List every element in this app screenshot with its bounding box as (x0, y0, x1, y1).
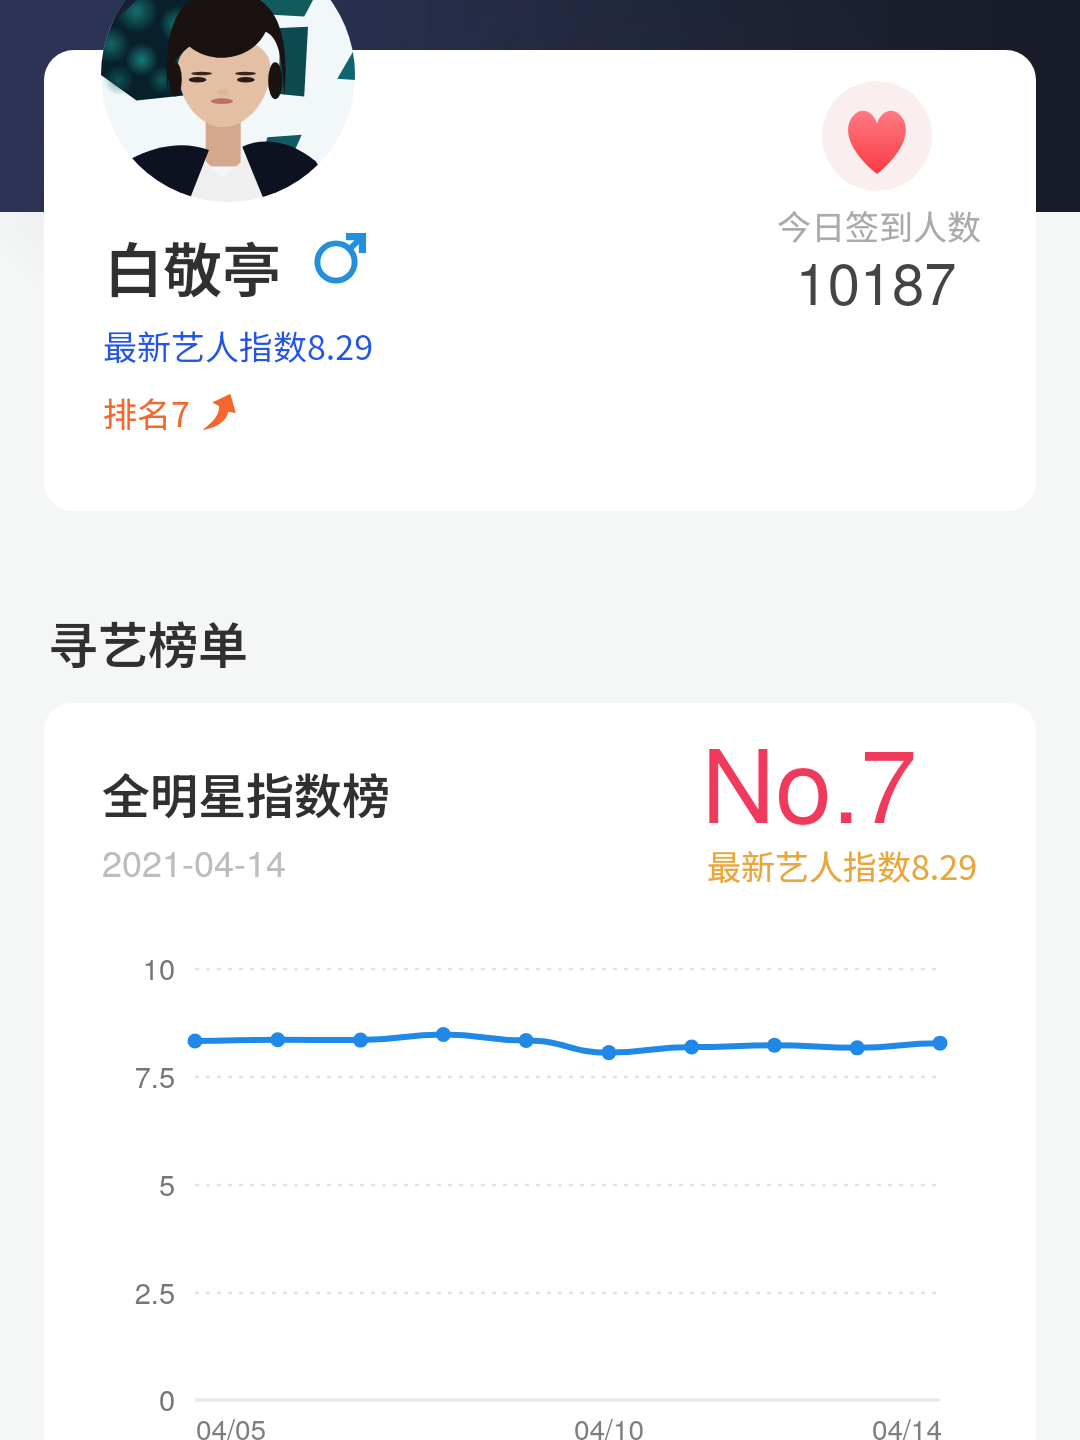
staticText: 04/14 (762, 1408, 942, 1440)
button[interactable]: Check in (822, 81, 932, 191)
button[interactable] (44, 703, 1036, 1440)
staticText: 04/05 (196, 1408, 376, 1440)
button[interactable]: 最新艺人指数8.29 (103, 321, 374, 370)
staticText: 最新艺人指数8.29 (677, 841, 977, 890)
staticText: 0 (55, 1378, 175, 1420)
other: Male (314, 228, 370, 284)
staticText: 寻艺榜单 (48, 606, 248, 678)
button[interactable] (44, 50, 1036, 511)
staticText: 排名7 (103, 388, 190, 437)
staticText: 7.5 (55, 1055, 175, 1097)
staticText: 2.5 (55, 1271, 175, 1313)
staticText: 今日签到人数 (777, 201, 981, 250)
staticText: 2021-04-14 (102, 836, 287, 888)
staticText: 全明星指数榜 (102, 758, 391, 828)
button[interactable]: Profile avatar (101, 0, 355, 202)
staticText: No.7 (617, 706, 917, 852)
staticText: 04/10 (519, 1408, 699, 1440)
staticText: 5 (55, 1163, 175, 1205)
staticText: 10 (55, 947, 175, 989)
staticText: 白敬亭 (104, 224, 282, 309)
staticText: 10187 (758, 238, 994, 321)
